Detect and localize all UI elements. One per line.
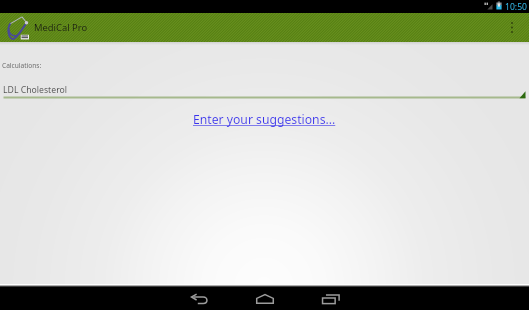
button[interactable]: More options bbox=[495, 13, 529, 42]
button[interactable]: Recent apps bbox=[318, 287, 344, 310]
button[interactable]: LDL Cholesterol bbox=[0, 84, 529, 102]
staticText: 10:50 bbox=[505, 1, 527, 13]
button[interactable]: Home bbox=[252, 287, 278, 310]
staticText: LDL Cholesterol bbox=[3, 84, 68, 96]
staticText: Calculations: bbox=[2, 61, 42, 70]
button[interactable]: Back bbox=[186, 287, 212, 310]
button[interactable]: Enter your suggestions... bbox=[193, 111, 336, 128]
staticText: MediCal Pro bbox=[34, 21, 88, 34]
